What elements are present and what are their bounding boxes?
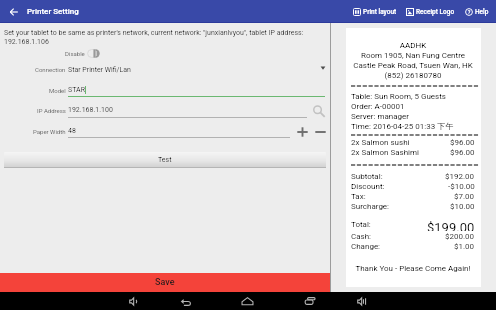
staticText: $96.00 <box>450 148 475 157</box>
button[interactable]: Home <box>238 292 256 310</box>
staticText: Save <box>155 277 175 288</box>
staticText: $1.00 <box>454 242 475 251</box>
button[interactable]: Back <box>177 292 195 310</box>
staticText: Paper Width <box>33 128 66 135</box>
staticText: -$10.00 <box>448 182 475 191</box>
staticText: Thank You - Please Come Again! <box>351 264 475 273</box>
staticText: Change: <box>351 242 381 251</box>
button[interactable]: Connection <box>0 64 330 78</box>
staticText: Test <box>158 156 172 164</box>
button[interactable]: Volume <box>352 292 370 310</box>
staticText: Room 1905, Nan Fung Centre <box>351 51 475 60</box>
staticText: Cash: <box>351 232 372 241</box>
staticText: $10.00 <box>450 202 475 211</box>
staticText: Surcharge: <box>351 202 390 211</box>
button[interactable]: Search <box>308 102 330 120</box>
staticText: Disable <box>65 50 85 57</box>
staticText: 2x Salmon sushi <box>351 138 410 147</box>
staticText: Help <box>475 8 489 16</box>
staticText: Print layout <box>363 8 397 16</box>
staticText: STAR <box>68 86 85 94</box>
button[interactable]: IP Address <box>0 102 330 120</box>
button[interactable]: Disable <box>65 47 100 59</box>
staticText: Total: <box>351 220 371 229</box>
button[interactable]: Recents <box>301 292 319 310</box>
staticText: $192.00 <box>445 172 475 181</box>
button[interactable]: Volume <box>124 292 142 310</box>
staticText: $200.00 <box>445 232 475 241</box>
button[interactable]: Decrease paper width <box>311 123 330 141</box>
staticText: Discount: <box>351 182 385 191</box>
staticText: (852) 26180780 <box>351 71 475 80</box>
staticText: 48 <box>68 127 76 135</box>
staticText: Order: A-00001 <box>351 102 475 111</box>
staticText: 192.168.1.100 <box>68 106 113 114</box>
button[interactable]: Navigate up <box>0 0 28 23</box>
button[interactable]: Receipt Logo <box>403 0 442 23</box>
staticText: Printer Setting <box>27 7 79 16</box>
staticText: Model <box>49 87 66 94</box>
staticText: Table: Sun Room, 5 Guests <box>351 92 475 101</box>
button[interactable]: Print layout <box>349 0 383 23</box>
staticText: 2x Salmon Sashimi <box>351 148 420 157</box>
staticText: Castle Peak Road, Tsuen Wan, HK <box>351 61 475 70</box>
button[interactable]: Save <box>0 273 330 292</box>
staticText: $7.00 <box>454 192 475 201</box>
staticText: $199.00 <box>427 220 475 231</box>
button[interactable]: Model <box>0 82 330 100</box>
staticText: Receipt Logo <box>416 8 455 16</box>
button[interactable]: Test <box>4 152 326 168</box>
staticText: IP Address <box>37 107 66 114</box>
staticText: Set your tablet to be same as printer's … <box>4 29 304 45</box>
staticText: Tax: <box>351 192 366 201</box>
staticText: Time: 2016-04-25 01:33 下午 <box>351 121 475 131</box>
staticText: Server: manager <box>351 112 475 121</box>
staticText: Star Printer Wifi/Lan <box>68 66 131 74</box>
button[interactable]: Help <box>462 0 476 23</box>
staticText: AADHK <box>351 41 475 50</box>
button[interactable]: Increase paper width <box>294 123 311 141</box>
staticText: Connection <box>35 66 66 73</box>
staticText: Subtotal: <box>351 172 383 181</box>
staticText: $96.00 <box>450 138 475 147</box>
button[interactable]: Paper Width <box>0 123 330 141</box>
